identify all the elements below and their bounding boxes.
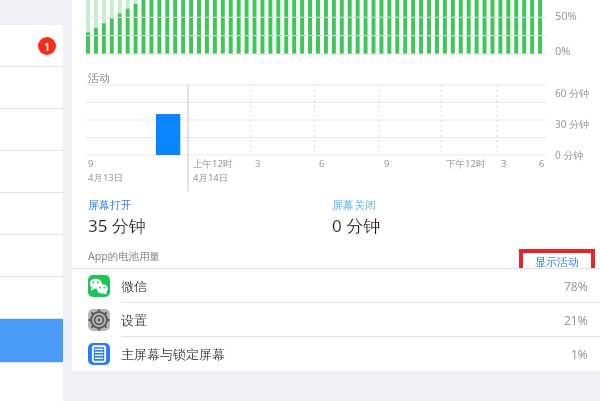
staticText: App的电池用量 xyxy=(88,249,161,263)
button[interactable]: Sidebar item xyxy=(0,151,63,193)
staticText: 0 分钟 xyxy=(332,214,381,237)
staticText: 设置 xyxy=(121,312,564,328)
button[interactable]: 微信 xyxy=(72,269,600,303)
staticText: 35 分钟 xyxy=(88,214,146,237)
staticText: 9 xyxy=(384,157,390,170)
staticText: 78% xyxy=(564,278,588,294)
button[interactable]: Notification 1 xyxy=(0,25,63,67)
button[interactable]: Sidebar item xyxy=(0,277,63,319)
staticText: 1% xyxy=(571,346,588,362)
staticText: 50% xyxy=(555,8,577,23)
staticText: 微信 xyxy=(121,278,564,294)
button[interactable]: Sidebar item xyxy=(0,193,63,235)
staticText: 4月14日 xyxy=(193,171,229,184)
staticText: 活动 xyxy=(88,71,110,85)
button[interactable]: Sidebar item xyxy=(0,235,63,277)
staticText: 9 xyxy=(88,157,94,170)
button[interactable]: Sidebar item xyxy=(0,362,63,401)
button[interactable]: 主屏幕与锁定屏幕 xyxy=(72,337,600,371)
staticText: 4月13日 xyxy=(88,171,124,184)
staticText: 60 分钟 xyxy=(555,86,590,100)
staticText: 0% xyxy=(555,43,571,58)
staticText: 上午12时 xyxy=(193,157,233,170)
staticText: 1 xyxy=(44,39,51,54)
button[interactable]: 显示活动 xyxy=(523,253,591,271)
button[interactable]: 设置 xyxy=(72,303,600,337)
staticText: 0 分钟 xyxy=(555,148,584,162)
staticText: 显示活动 xyxy=(535,255,579,269)
button[interactable]: Sidebar item xyxy=(0,67,63,109)
staticText: 下午12时 xyxy=(446,157,486,170)
staticText: 6 xyxy=(319,157,325,170)
staticText: 屏幕打开 xyxy=(88,198,132,212)
staticText: 30 分钟 xyxy=(555,117,590,131)
staticText: 21% xyxy=(564,312,588,328)
staticText: 3 xyxy=(501,157,507,170)
staticText: 屏幕关闭 xyxy=(332,198,376,212)
staticText: 3 xyxy=(255,157,261,170)
button[interactable]: Sidebar item xyxy=(0,109,63,151)
staticText: 6 xyxy=(539,157,545,170)
staticText: 主屏幕与锁定屏幕 xyxy=(121,346,571,362)
